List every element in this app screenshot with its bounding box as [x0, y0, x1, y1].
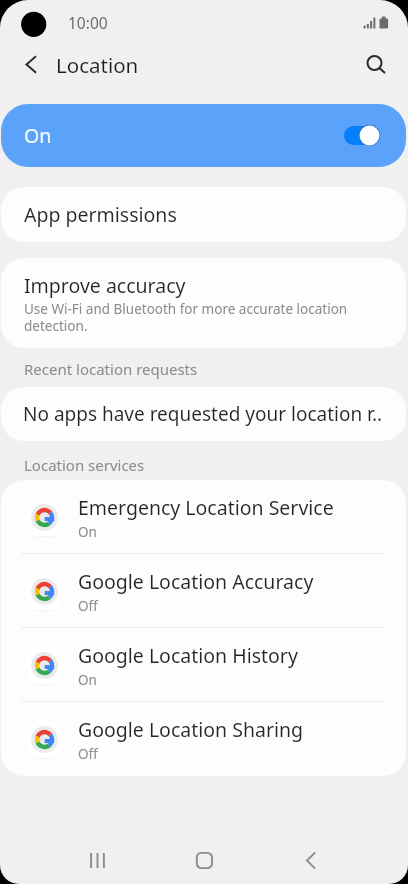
button[interactable]: Google Location History [1, 628, 406, 702]
staticText: Emergency Location Service [78, 494, 334, 521]
button[interactable]: Improve accuracy [1, 258, 406, 348]
staticText: 10:00 [68, 12, 108, 33]
button[interactable]: Recent apps [77, 840, 118, 881]
staticText: On [24, 122, 52, 149]
button[interactable]: Google Location Sharing [1, 702, 406, 776]
staticText: On [78, 671, 97, 689]
button[interactable]: Emergency Location Service [1, 480, 406, 554]
button[interactable]: Navigate up [13, 46, 49, 82]
staticText: Google Location Sharing [78, 716, 304, 743]
button[interactable]: App permissions [1, 187, 406, 242]
staticText: Google Location History [78, 642, 298, 669]
staticText: Off [78, 745, 98, 763]
staticText: Google Location Accuracy [78, 568, 314, 595]
staticText: Use Wi-Fi and Bluetooth for more accurat… [24, 300, 376, 335]
staticText: Location services [24, 455, 145, 475]
button[interactable]: No apps have requested your location r.. [1, 387, 406, 441]
staticText: Off [78, 597, 98, 615]
staticText: On [78, 523, 97, 541]
button[interactable]: Location on [344, 124, 380, 147]
staticText: Improve accuracy [24, 272, 186, 299]
button[interactable]: Google Location Accuracy [1, 554, 406, 628]
staticText: App permissions [24, 201, 177, 228]
staticText: Location [56, 51, 139, 79]
button[interactable]: Back [290, 840, 331, 881]
button[interactable]: Home [184, 840, 225, 881]
button[interactable]: On [1, 104, 406, 167]
button[interactable]: Search [356, 46, 393, 83]
staticText: No apps have requested your location r.. [23, 401, 383, 427]
staticText: Recent location requests [24, 359, 198, 379]
